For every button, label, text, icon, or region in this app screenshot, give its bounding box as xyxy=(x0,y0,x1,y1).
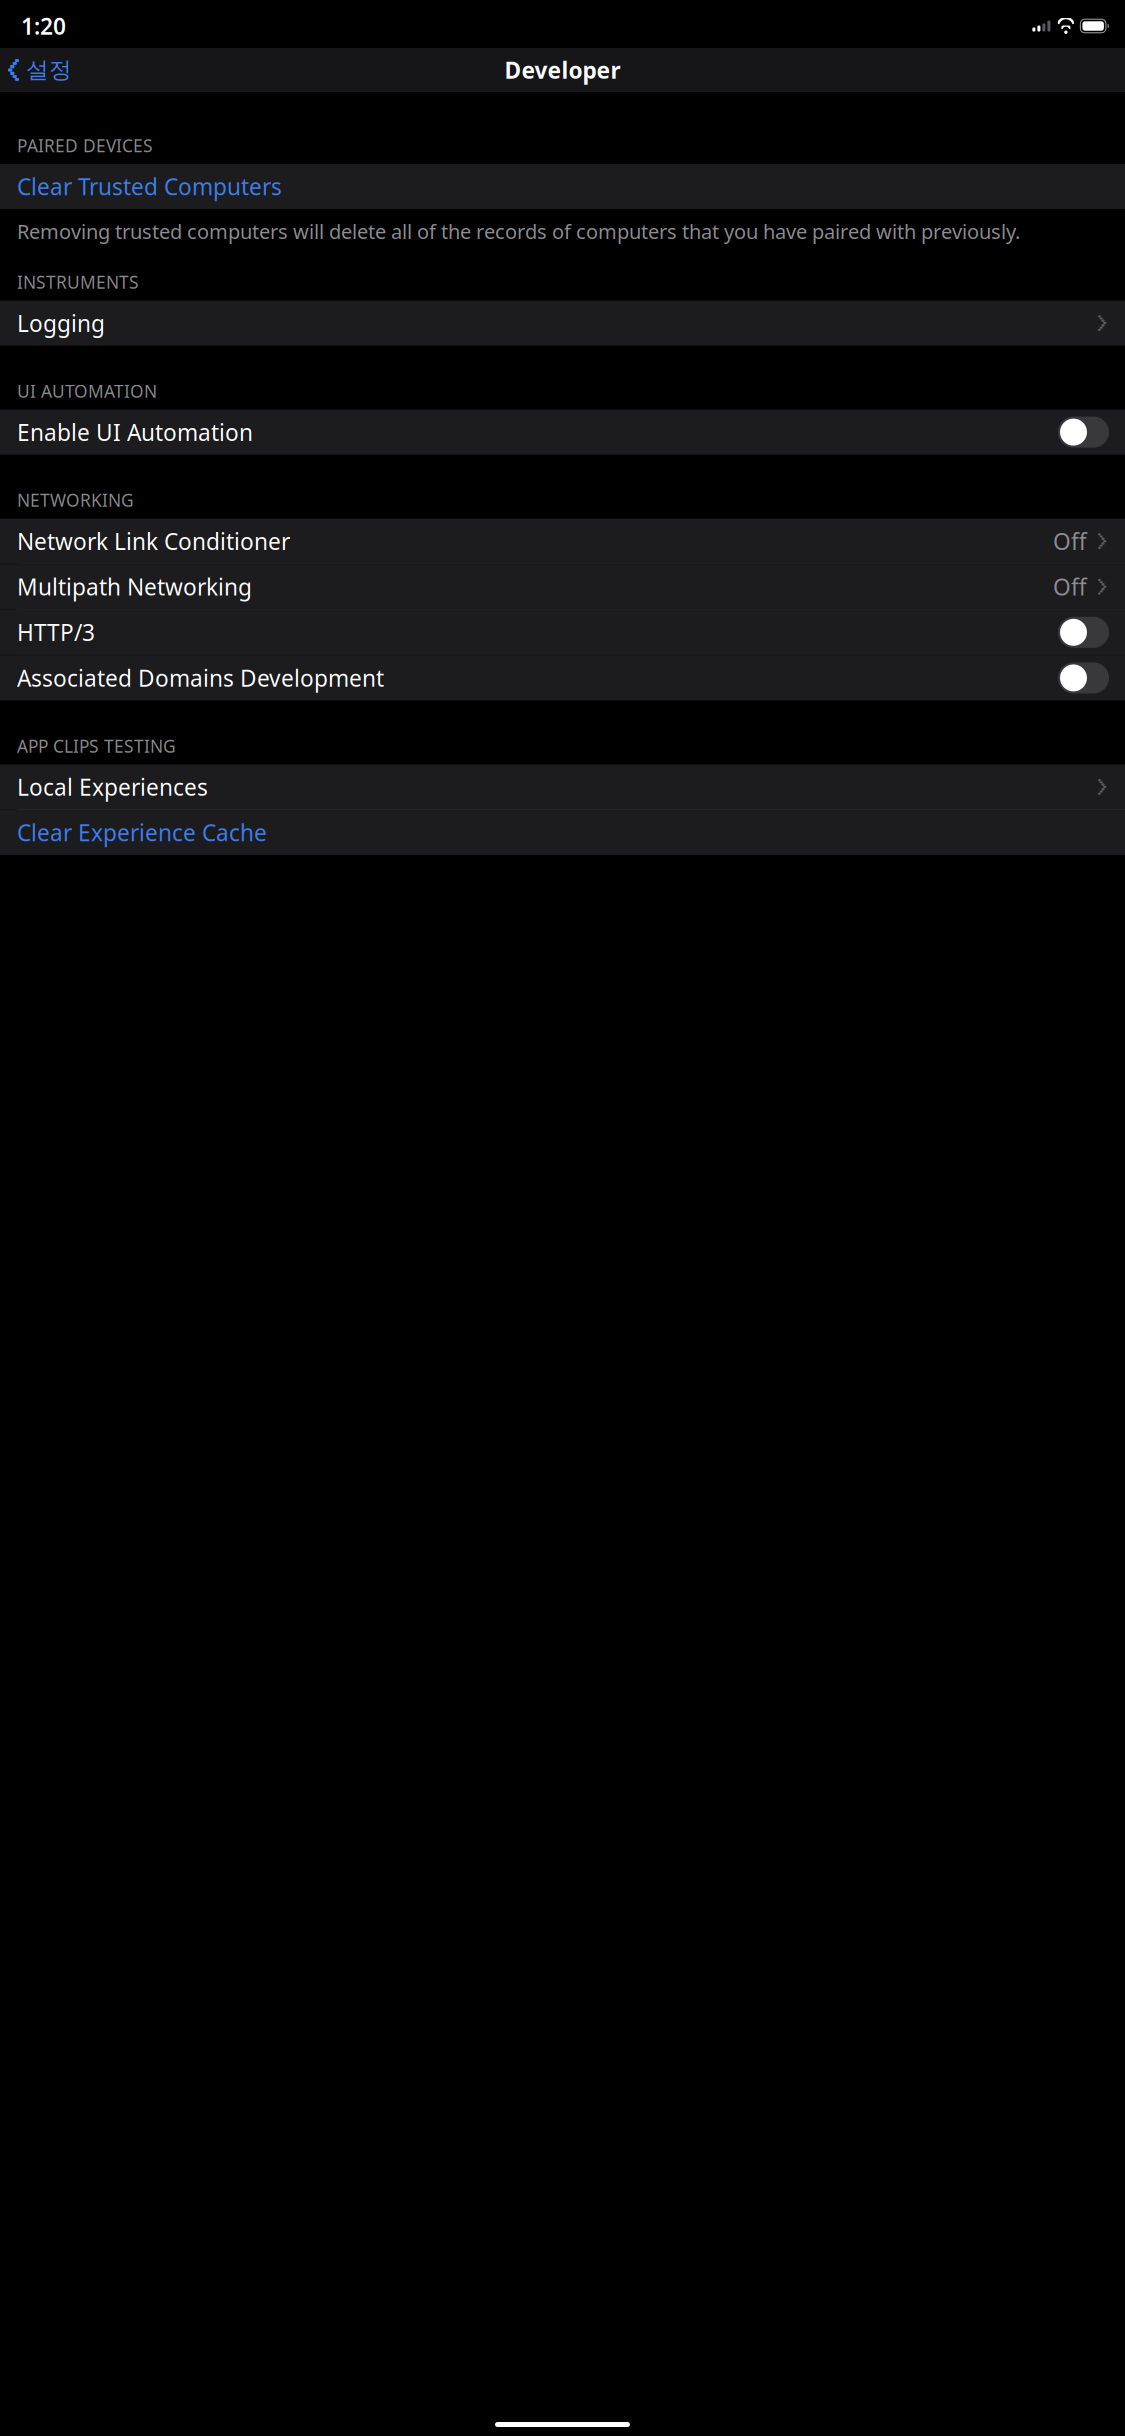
button[interactable]: Clear Trusted Computers xyxy=(0,164,1125,209)
staticText: Clear Trusted Computers xyxy=(17,171,282,202)
staticText: Multipath Networking xyxy=(17,572,252,602)
staticText: Enable UI Automation xyxy=(17,417,253,447)
staticText: 1:20 xyxy=(21,11,66,41)
button[interactable]: Enable UI Automation xyxy=(0,410,1125,455)
staticText: PAIRED DEVICES xyxy=(17,134,153,157)
staticText: Network Link Conditioner xyxy=(17,526,290,556)
button[interactable]: Local Experiences xyxy=(0,764,1125,809)
staticText: HTTP/3 xyxy=(17,617,95,647)
button[interactable]: Clear Experience Cache xyxy=(0,810,1125,855)
staticText: Clear Experience Cache xyxy=(17,817,267,848)
staticText: Off xyxy=(1053,572,1087,602)
button[interactable]: 설정 xyxy=(0,50,80,90)
staticText: Associated Domains Development xyxy=(17,663,384,693)
staticText: Removing trusted computers will delete a… xyxy=(17,218,1020,245)
staticText: NETWORKING xyxy=(17,489,134,512)
staticText: APP CLIPS TESTING xyxy=(17,734,176,757)
staticText: UI AUTOMATION xyxy=(17,380,157,403)
staticText: Off xyxy=(1053,526,1087,556)
staticText: INSTRUMENTS xyxy=(17,271,139,294)
button[interactable]: Associated Domains Development xyxy=(0,655,1125,700)
button[interactable]: Logging xyxy=(0,301,1125,346)
button[interactable]: HTTP/3 xyxy=(0,610,1125,655)
staticText: Local Experiences xyxy=(17,772,208,802)
staticText: Developer xyxy=(504,55,620,85)
staticText: Logging xyxy=(17,308,105,338)
button[interactable]: Multipath Networking xyxy=(0,564,1125,609)
staticText: 설정 xyxy=(26,56,72,84)
button[interactable]: Network Link Conditioner xyxy=(0,519,1125,564)
